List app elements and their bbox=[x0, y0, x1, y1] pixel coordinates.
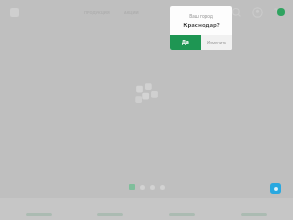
button[interactable]: Изменить bbox=[201, 35, 232, 50]
button[interactable]: ПРОДУКЦИЯ bbox=[84, 10, 110, 15]
staticText: Да bbox=[182, 39, 189, 46]
staticText: ПРОДУКЦИЯ bbox=[84, 10, 110, 15]
button[interactable]: Slide 1 bbox=[129, 184, 135, 190]
button[interactable]: Profile bbox=[252, 7, 263, 18]
staticText: Ваш город bbox=[189, 13, 213, 19]
button[interactable] bbox=[149, 198, 215, 220]
button[interactable]: Cart bbox=[273, 6, 285, 18]
button[interactable]: Slide bbox=[160, 185, 165, 190]
button[interactable] bbox=[221, 198, 287, 220]
button[interactable] bbox=[77, 198, 143, 220]
staticText: АКЦИИ bbox=[124, 10, 139, 15]
button[interactable]: Slide bbox=[150, 185, 155, 190]
staticText: Краснодар? bbox=[183, 21, 220, 29]
button[interactable]: АКЦИИ bbox=[124, 10, 139, 15]
button[interactable] bbox=[6, 198, 71, 220]
button[interactable]: Да bbox=[170, 35, 201, 50]
button[interactable]: Search bbox=[231, 7, 242, 18]
button[interactable]: Chat support bbox=[270, 183, 281, 194]
button[interactable]: Slide bbox=[140, 185, 145, 190]
staticText: Изменить bbox=[207, 40, 227, 45]
